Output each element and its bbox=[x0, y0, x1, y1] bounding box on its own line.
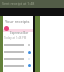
staticText: Your receipts bbox=[5, 19, 30, 24]
button[interactable] bbox=[3, 26, 33, 40]
staticText: Today at 1:48 PM bbox=[4, 36, 27, 40]
button[interactable] bbox=[3, 41, 33, 48]
button[interactable] bbox=[3, 55, 33, 62]
button[interactable] bbox=[3, 62, 33, 69]
button[interactable] bbox=[3, 48, 33, 55]
staticText: Espresso Bar bbox=[10, 31, 29, 35]
staticText: Sent receipt at 1:48 bbox=[2, 1, 35, 6]
